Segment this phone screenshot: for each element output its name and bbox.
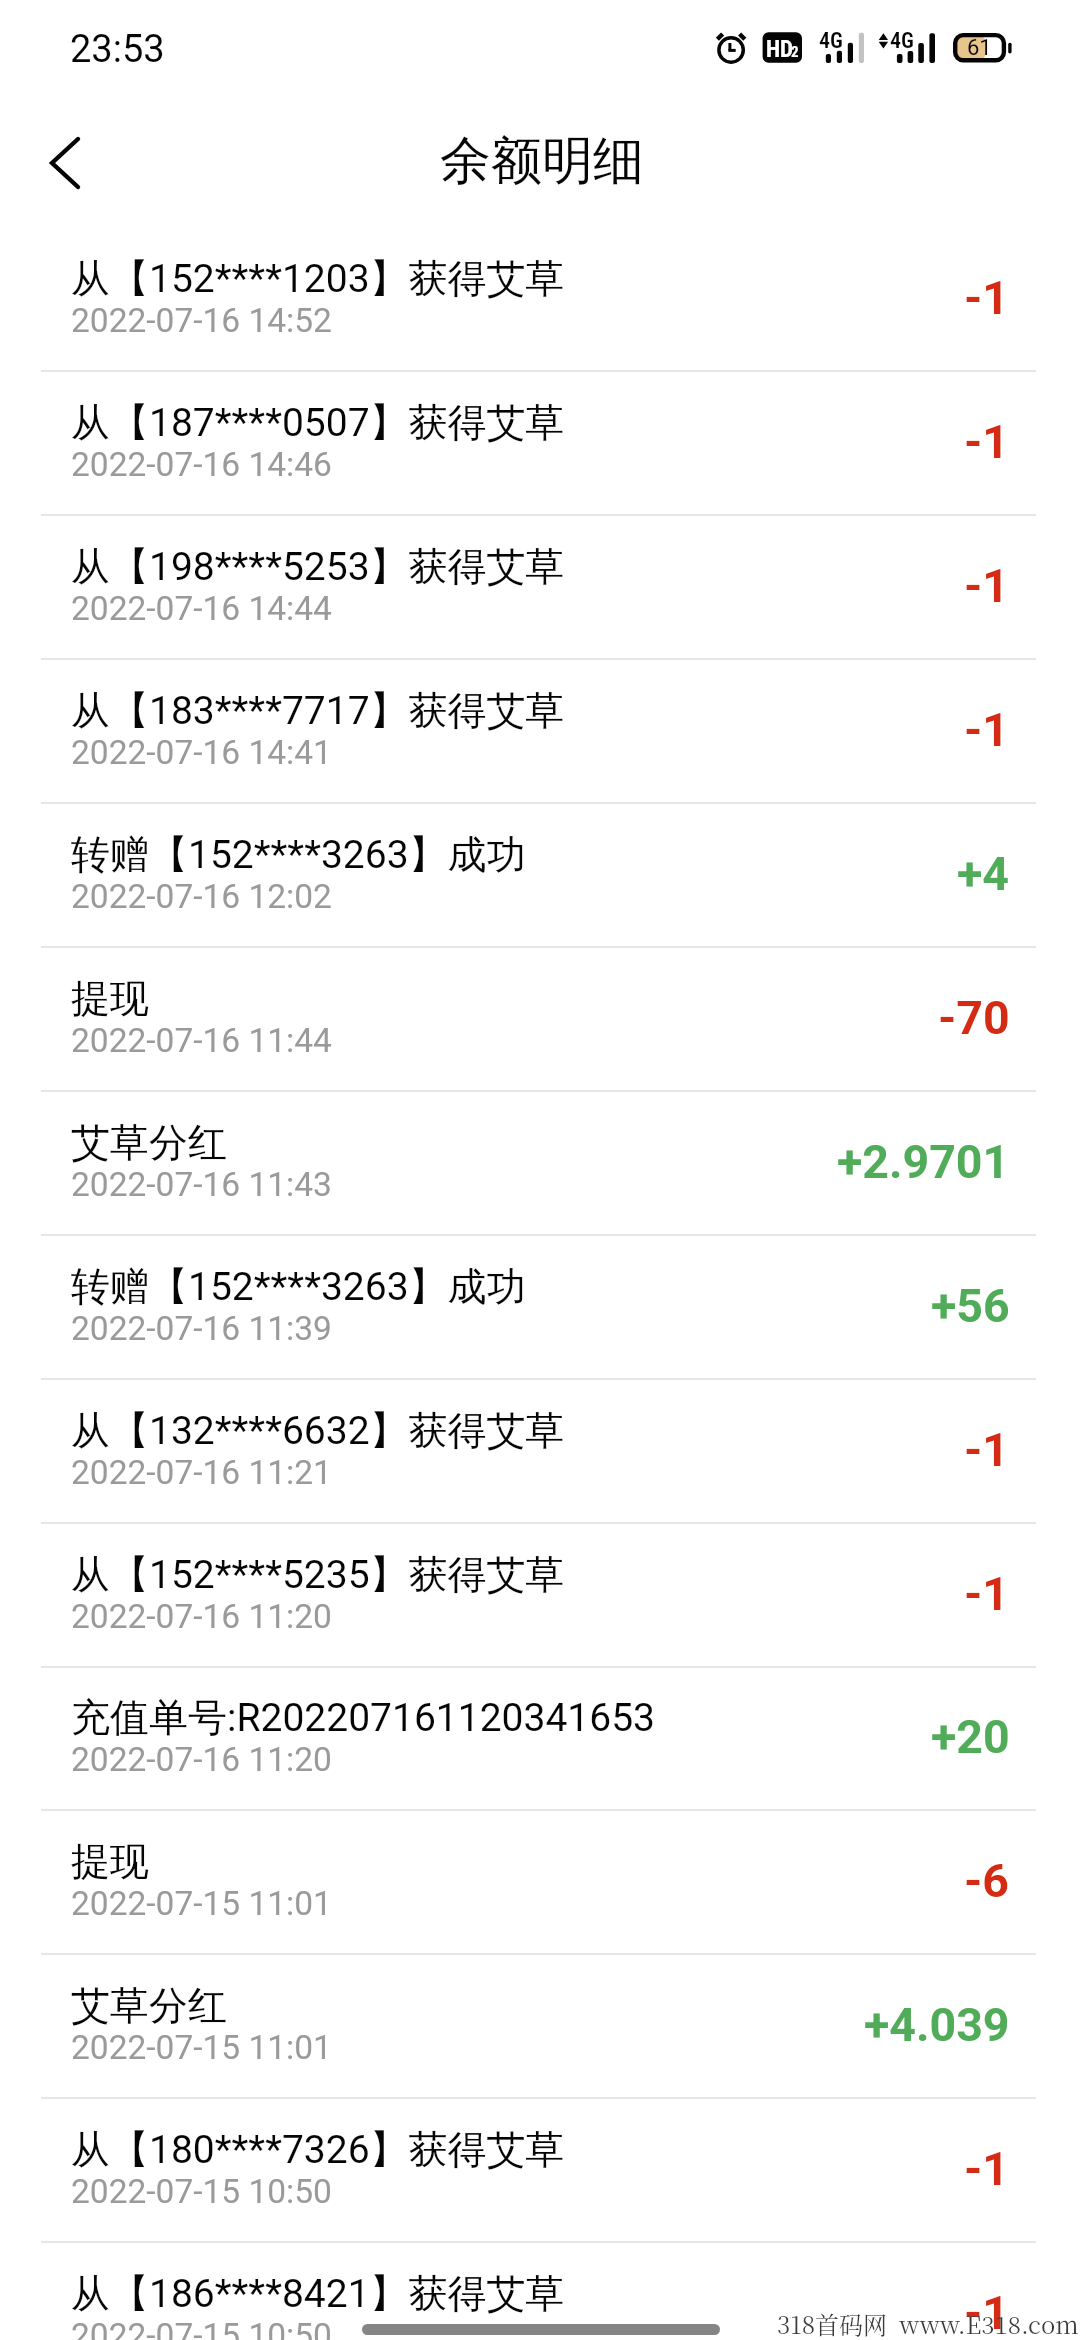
button[interactable]: 从【187****0507】获得艾草 — [0, 371, 1080, 515]
staticText: 转赠【152****3263】成功 — [71, 1262, 526, 1311]
staticText: 艾草分红 — [71, 1981, 227, 2030]
staticText: 从【186****8421】获得艾草 — [71, 2269, 565, 2318]
staticText: 2022-07-15 11:01 — [71, 2028, 332, 2067]
staticText: -6 — [964, 1854, 1010, 1908]
staticText: +20 — [931, 1710, 1010, 1764]
staticText: 提现 — [71, 1837, 149, 1886]
staticText: 余额明细 — [440, 129, 644, 193]
staticText: 从【152****5235】获得艾草 — [71, 1550, 565, 1599]
staticText: 23:53 — [70, 27, 165, 72]
staticText: -1 — [964, 703, 1010, 757]
staticText: 4G — [890, 28, 914, 54]
staticText: -1 — [964, 2142, 1010, 2196]
staticText: -1 — [964, 559, 1010, 613]
staticText: +56 — [931, 1279, 1010, 1333]
staticText: 61 — [967, 35, 992, 61]
staticText: 艾草分红 — [71, 1118, 227, 1167]
staticText: -1 — [964, 2286, 1010, 2340]
staticText: +4 — [957, 847, 1010, 901]
button[interactable]: 提现 — [0, 1810, 1080, 1954]
staticText: 2 — [791, 43, 799, 61]
staticText: 2022-07-16 11:20 — [71, 1597, 332, 1636]
staticText: -1 — [964, 415, 1010, 469]
staticText: 从【183****7717】获得艾草 — [71, 686, 565, 735]
staticText: +2.9701 — [837, 1135, 1010, 1189]
staticText: +4.039 — [864, 1998, 1010, 2052]
staticText: 2022-07-16 11:44 — [71, 1021, 332, 1060]
button[interactable]: 充值单号:R202207161120341653 — [0, 1666, 1080, 1810]
staticText: 2022-07-16 11:43 — [71, 1165, 332, 1204]
staticText: -1 — [964, 1567, 1010, 1621]
staticText: 2022-07-16 12:02 — [71, 877, 332, 916]
staticText: -1 — [964, 1423, 1010, 1477]
staticText: 2022-07-16 14:46 — [71, 445, 332, 484]
button[interactable]: 从【132****6632】获得艾草 — [0, 1379, 1080, 1523]
staticText: HD — [766, 36, 794, 63]
staticText: 从【198****5253】获得艾草 — [71, 542, 565, 591]
button[interactable]: 从【186****8421】获得艾草 — [0, 2242, 1080, 2340]
button[interactable]: 转赠【152****3263】成功 — [0, 1235, 1080, 1379]
button[interactable]: 从【152****5235】获得艾草 — [0, 1523, 1080, 1667]
staticText: 2022-07-15 10:50 — [71, 2316, 332, 2340]
button[interactable]: 从【198****5253】获得艾草 — [0, 515, 1080, 659]
staticText: 2022-07-16 14:52 — [71, 301, 332, 340]
staticText: -70 — [938, 991, 1010, 1045]
staticText: 4G — [819, 28, 843, 54]
button[interactable]: 从【180****7326】获得艾草 — [0, 2098, 1080, 2242]
button[interactable]: Back — [27, 125, 103, 201]
staticText: 从【187****0507】获得艾草 — [71, 398, 565, 447]
staticText: 318首码网 www.E318.com — [777, 2306, 1079, 2340]
staticText: 充值单号:R202207161120341653 — [71, 1693, 656, 1742]
button[interactable]: 从【183****7717】获得艾草 — [0, 659, 1080, 803]
button[interactable]: 提现 — [0, 947, 1080, 1091]
staticText: 2022-07-16 11:21 — [71, 1453, 332, 1492]
staticText: 从【180****7326】获得艾草 — [71, 2125, 565, 2174]
staticText: 2022-07-16 14:44 — [71, 589, 332, 628]
staticText: 2022-07-16 11:39 — [71, 1309, 332, 1348]
staticText: 2022-07-15 10:50 — [71, 2172, 332, 2211]
staticText: 2022-07-15 11:01 — [71, 1884, 332, 1923]
staticText: 从【152****1203】获得艾草 — [71, 254, 565, 303]
staticText: -1 — [964, 271, 1010, 325]
staticText: 转赠【152****3263】成功 — [71, 830, 526, 879]
button[interactable]: 艾草分红 — [0, 1954, 1080, 2098]
staticText: 提现 — [71, 974, 149, 1023]
staticText: 2022-07-16 14:41 — [71, 733, 332, 772]
button[interactable]: 从【152****1203】获得艾草 — [0, 227, 1080, 371]
staticText: 从【132****6632】获得艾草 — [71, 1406, 565, 1455]
button[interactable]: 艾草分红 — [0, 1091, 1080, 1235]
button[interactable]: 转赠【152****3263】成功 — [0, 803, 1080, 947]
staticText: 2022-07-16 11:20 — [71, 1740, 332, 1779]
